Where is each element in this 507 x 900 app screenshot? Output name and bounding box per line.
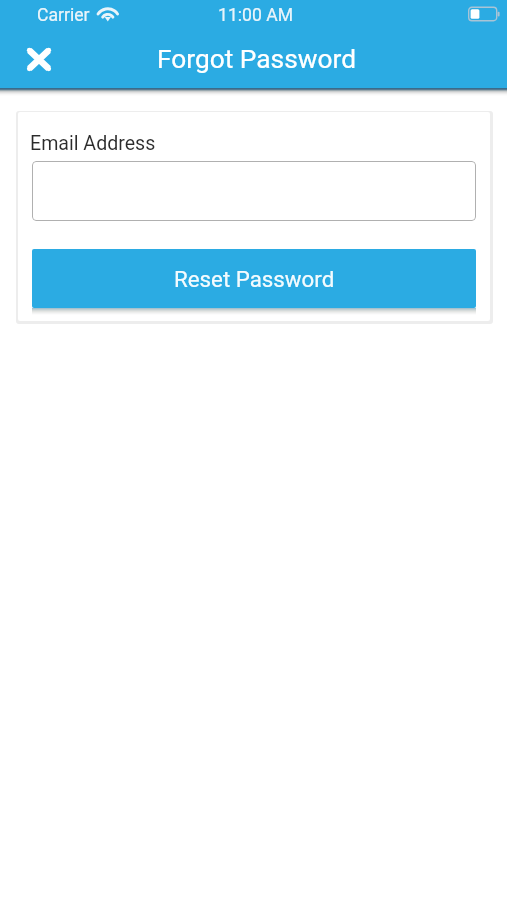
staticText: Carrier <box>37 5 90 26</box>
staticText: 11:00 AM <box>218 5 294 26</box>
staticText: Reset Password <box>174 266 335 292</box>
button[interactable]: Reset Password <box>32 249 476 308</box>
button[interactable] <box>32 161 476 221</box>
staticText: Email Address <box>30 132 156 155</box>
staticText: Forgot Password <box>157 44 356 75</box>
button[interactable]: Close <box>17 35 61 83</box>
